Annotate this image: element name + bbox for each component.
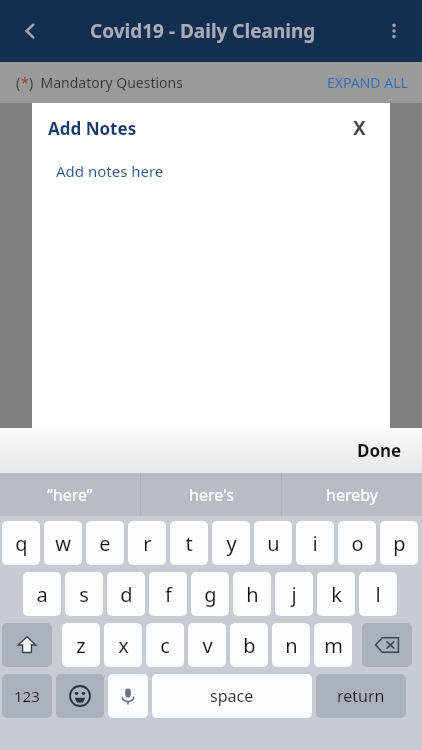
button[interactable]: f xyxy=(149,572,187,616)
staticText: a xyxy=(36,581,48,608)
button[interactable]: Done xyxy=(357,439,402,462)
button[interactable]: r xyxy=(128,521,166,565)
button[interactable]: e xyxy=(86,521,124,565)
button[interactable]: x xyxy=(104,623,142,667)
staticText: m xyxy=(324,632,343,659)
button[interactable]: Shift xyxy=(2,623,52,667)
button[interactable]: More options xyxy=(372,9,416,53)
button[interactable]: z xyxy=(62,623,100,667)
button[interactable]: y xyxy=(212,521,250,565)
staticText: o xyxy=(351,530,364,557)
button[interactable]: return xyxy=(316,674,406,718)
button[interactable]: Close xyxy=(342,111,376,145)
button[interactable]: c xyxy=(146,623,184,667)
button[interactable]: Add notes here xyxy=(56,161,414,191)
button[interactable]: o xyxy=(338,521,376,565)
button[interactable]: b xyxy=(230,623,268,667)
staticText: Covid19 - Daily Cleaning xyxy=(90,18,316,44)
staticText: “here” xyxy=(47,484,93,506)
staticText: Done xyxy=(357,439,402,462)
button[interactable]: t xyxy=(170,521,208,565)
staticText: c xyxy=(160,632,170,659)
button[interactable]: More options xyxy=(372,9,416,53)
button[interactable]: space xyxy=(152,674,312,718)
button[interactable]: n xyxy=(272,623,310,667)
button[interactable]: q xyxy=(2,521,40,565)
button[interactable]: g xyxy=(191,572,229,616)
staticText: hereby xyxy=(326,484,378,506)
button[interactable]: here's xyxy=(141,473,281,516)
button[interactable]: l xyxy=(359,572,397,616)
staticText: q xyxy=(15,530,28,557)
staticText: j xyxy=(291,581,297,608)
button[interactable]: v xyxy=(188,623,226,667)
button[interactable]: Emoji xyxy=(56,674,104,718)
button[interactable]: “here” xyxy=(0,473,140,516)
button[interactable]: k xyxy=(317,572,355,616)
button[interactable]: w xyxy=(44,521,82,565)
staticText: ( xyxy=(16,73,21,92)
button[interactable]: j xyxy=(275,572,313,616)
staticText: x xyxy=(118,632,129,659)
staticText: h xyxy=(246,581,259,608)
staticText: d xyxy=(120,581,133,608)
staticText: Add notes here xyxy=(56,161,164,181)
staticText: w xyxy=(55,530,71,557)
button[interactable]: m xyxy=(314,623,352,667)
button[interactable]: u xyxy=(254,521,292,565)
staticText: EXPAND ALL xyxy=(327,73,408,92)
staticText: g xyxy=(204,581,217,608)
staticText: n xyxy=(285,632,298,659)
staticText: return xyxy=(337,685,385,707)
staticText: k xyxy=(331,581,342,608)
staticText: ) Mandatory Questions xyxy=(29,73,183,92)
button[interactable]: Back xyxy=(8,9,52,53)
staticText: r xyxy=(143,530,152,557)
staticText: v xyxy=(202,632,213,659)
staticText: u xyxy=(267,530,280,557)
staticText: space xyxy=(210,685,254,707)
staticText: ) Mandatory Questions xyxy=(29,73,183,92)
staticText: b xyxy=(243,632,256,659)
button[interactable]: s xyxy=(65,572,103,616)
button[interactable]: a xyxy=(23,572,61,616)
staticText: e xyxy=(99,530,111,557)
staticText: here's xyxy=(189,484,234,506)
staticText: * xyxy=(21,73,29,92)
button[interactable]: Backspace xyxy=(362,623,412,667)
staticText: y xyxy=(226,530,237,557)
staticText: l xyxy=(375,581,381,608)
staticText: Covid19 - Daily Cleaning xyxy=(90,18,316,44)
staticText: z xyxy=(76,632,86,659)
button[interactable]: Back xyxy=(8,9,52,53)
staticText: s xyxy=(79,581,89,608)
staticText: t xyxy=(185,530,193,557)
staticText: Add Notes xyxy=(48,117,137,140)
button[interactable]: 123 xyxy=(2,674,52,718)
staticText: f xyxy=(165,581,172,608)
staticText: p xyxy=(393,530,406,557)
staticText: i xyxy=(312,530,318,557)
staticText: ( xyxy=(16,73,21,92)
button[interactable]: Dictate xyxy=(108,674,148,718)
button[interactable]: EXPAND ALL xyxy=(327,73,408,92)
button[interactable]: EXPAND ALL xyxy=(327,73,408,92)
staticText: * xyxy=(21,73,29,92)
staticText: 123 xyxy=(14,686,40,706)
staticText: EXPAND ALL xyxy=(327,73,408,92)
button[interactable]: d xyxy=(107,572,145,616)
staticText: X xyxy=(353,115,366,141)
button[interactable]: hereby xyxy=(282,473,422,516)
button[interactable]: h xyxy=(233,572,271,616)
button[interactable]: i xyxy=(296,521,334,565)
button[interactable]: p xyxy=(380,521,418,565)
